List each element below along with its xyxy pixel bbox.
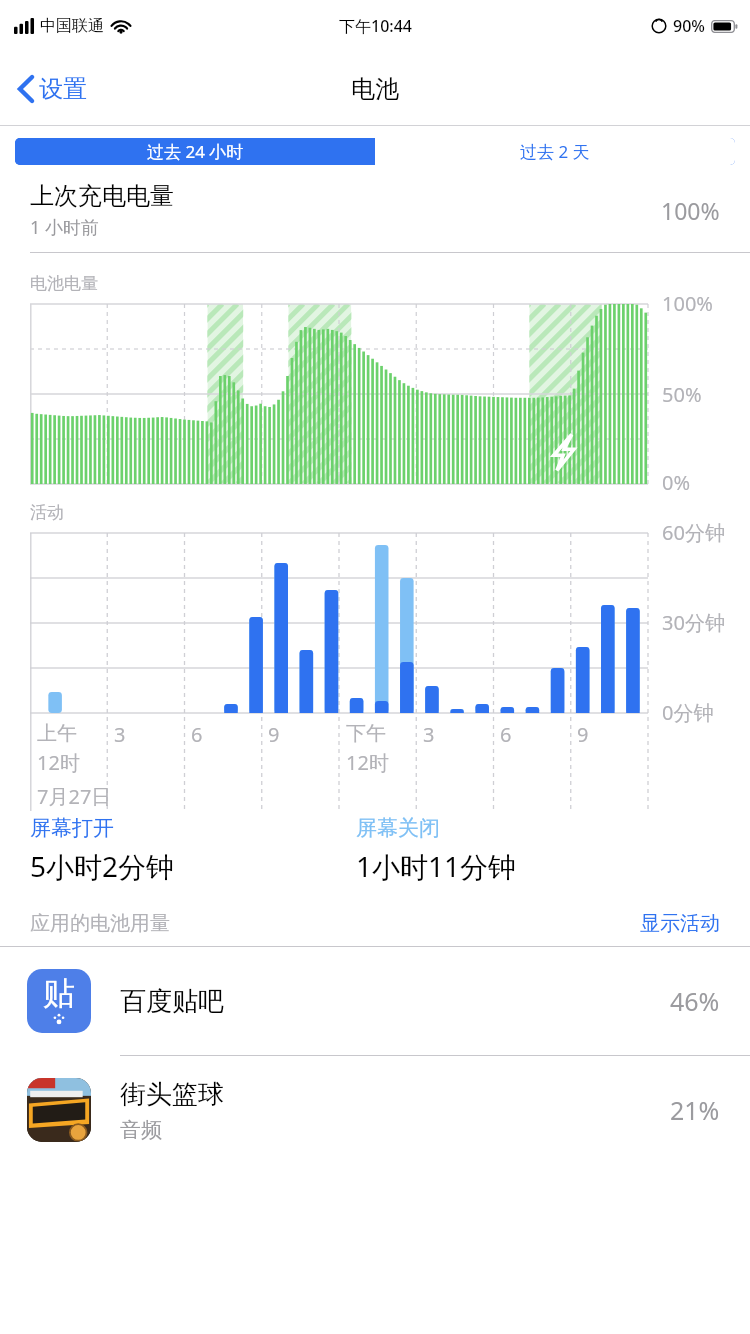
button[interactable]: 街头篮球 [0, 1056, 750, 1164]
staticText: 屏幕关闭 [356, 815, 440, 841]
staticText: 应用的电池用量 [30, 911, 640, 936]
staticText: 9 [577, 721, 589, 748]
other: Back [18, 75, 34, 103]
staticText: 1小时11分钟 [356, 847, 517, 885]
staticText: 46% [670, 984, 720, 1018]
staticText: 7月27日 [37, 783, 112, 810]
staticText: 贴 [43, 973, 75, 1013]
staticText: 30分钟 [662, 609, 725, 636]
staticText: 百度贴吧 [120, 985, 224, 1018]
staticText: 3 [423, 721, 435, 748]
staticText: 下午10:44 [339, 15, 412, 37]
button[interactable]: 过去 24 小时 [15, 138, 375, 165]
staticText: 过去 24 小时 [147, 140, 244, 163]
staticText: 90% [673, 15, 705, 37]
staticText: 0分钟 [662, 699, 714, 726]
staticText: 21% [670, 1093, 720, 1127]
staticText: 0% [662, 469, 691, 496]
button[interactable]: 过去 2 天 [375, 138, 735, 165]
staticText: 60分钟 [662, 519, 725, 546]
staticText: 过去 2 天 [520, 140, 590, 163]
staticText: 12时 [37, 749, 80, 776]
staticText: 电池 [351, 74, 399, 104]
staticText: 100% [661, 195, 720, 226]
button[interactable]: 上次充电电量 [0, 179, 750, 252]
staticText: 显示活动 [640, 911, 720, 936]
button[interactable]: 显示活动 [640, 911, 720, 936]
staticText: 12时 [346, 749, 389, 776]
staticText: 9 [268, 721, 280, 748]
staticText: 100% [662, 290, 713, 317]
staticText: 设置 [39, 74, 87, 104]
staticText: 街头篮球 [120, 1078, 224, 1111]
staticText: 中国联通 [40, 16, 104, 36]
staticText: 6 [191, 721, 203, 748]
button[interactable]: 贴 [0, 947, 750, 1055]
staticText: 活动 [30, 502, 64, 523]
button[interactable]: Back [10, 66, 95, 112]
staticText: 1 小时前 [30, 215, 99, 240]
staticText: 音频 [120, 1117, 162, 1143]
staticText: 下午 [346, 721, 386, 746]
staticText: 屏幕打开 [30, 815, 114, 841]
staticText: 上次充电电量 [30, 181, 174, 211]
staticText: 3 [114, 721, 126, 748]
staticText: 电池电量 [30, 273, 98, 294]
staticText: 5小时2分钟 [30, 847, 175, 885]
staticText: 6 [500, 721, 512, 748]
staticText: 50% [662, 381, 702, 408]
staticText: 上午 [37, 721, 77, 746]
